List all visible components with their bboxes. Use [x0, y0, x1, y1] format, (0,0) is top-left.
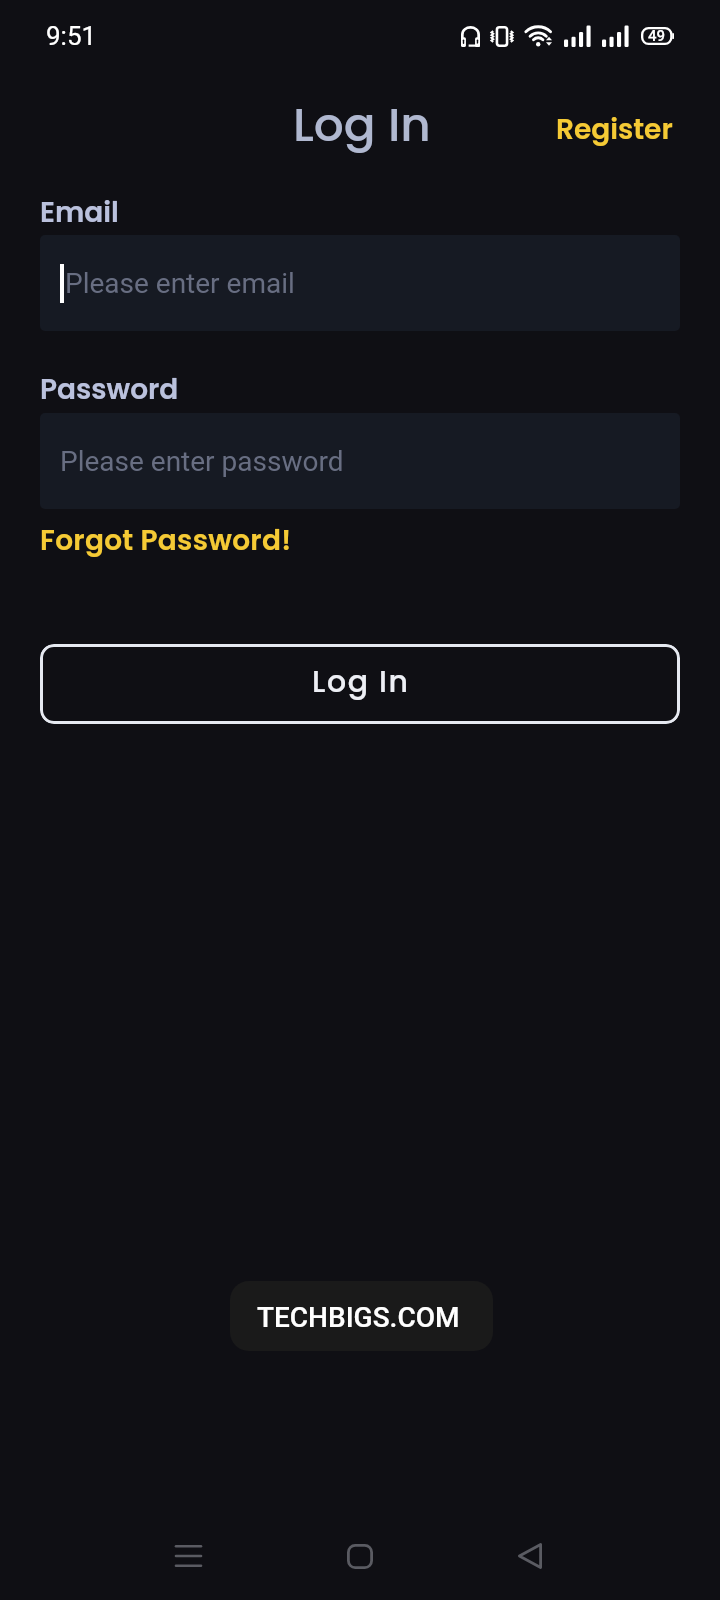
button[interactable]: Back	[482, 1520, 578, 1592]
staticText: Email	[40, 193, 119, 232]
staticText: 49	[648, 27, 666, 45]
staticText: Register	[556, 110, 673, 149]
staticText: Forgot Password!	[40, 521, 292, 560]
staticText: Log In	[293, 92, 431, 158]
staticText: Please enter password	[60, 445, 344, 478]
staticText: Log In	[312, 661, 410, 703]
button[interactable]: Please enter email	[40, 235, 680, 331]
button[interactable]: Forgot Password!	[40, 521, 292, 560]
button[interactable]: Log In	[40, 644, 680, 724]
staticText: Please enter email	[65, 267, 295, 300]
button[interactable]: Register	[540, 96, 697, 163]
staticText: Password	[40, 370, 179, 409]
button[interactable]: Please enter password	[40, 413, 680, 509]
button[interactable]: Home	[312, 1520, 408, 1592]
button[interactable]: Recent apps	[140, 1520, 236, 1592]
staticText: 9:51	[46, 21, 97, 51]
staticText: TECHBIGS.COM	[257, 1301, 460, 1334]
